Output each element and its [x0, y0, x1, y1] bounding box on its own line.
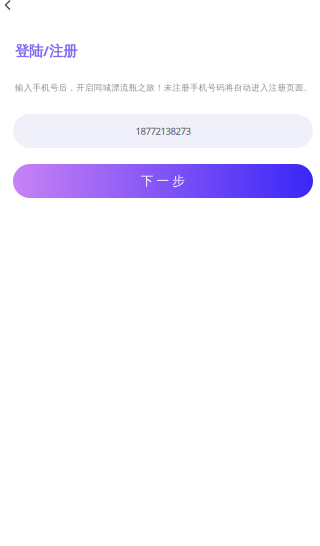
staticText: 输入手机号后，开启同城漂流瓶之旅！未注册手机号码将自动进入注册页面。 [15, 82, 312, 93]
button[interactable]: 下一步 [13, 164, 313, 198]
button[interactable]: Back [0, 0, 21, 11]
button[interactable]: Phone number [13, 114, 313, 148]
staticText: 下一步 [141, 173, 185, 189]
staticText: 18772138273 [135, 124, 190, 138]
staticText: 登陆/注册 [15, 41, 77, 60]
